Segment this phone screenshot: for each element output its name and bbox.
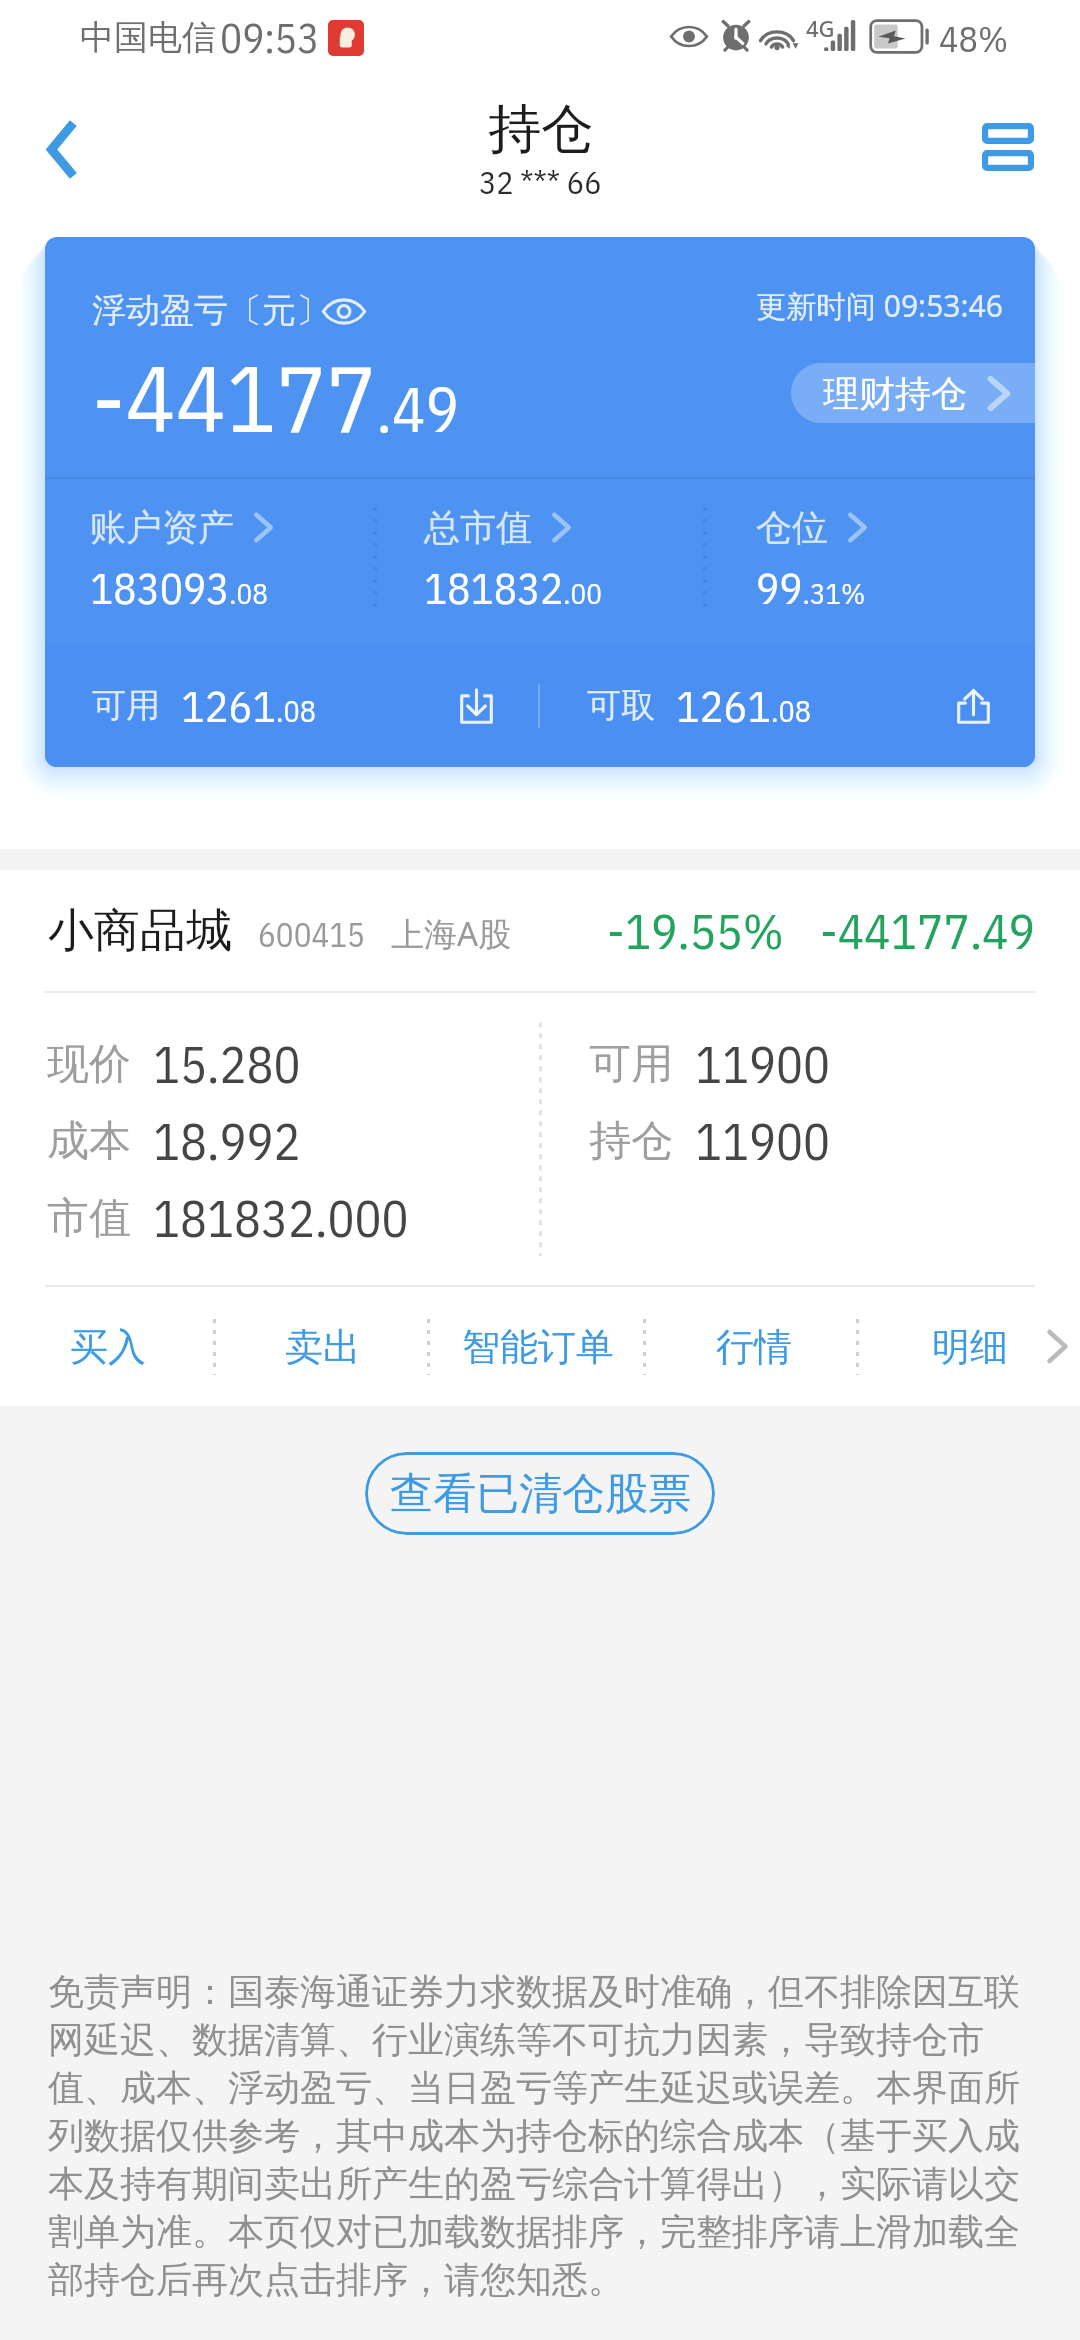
staticText: 中国电信 xyxy=(80,16,216,59)
staticText: 成本 xyxy=(47,1115,153,1168)
staticText: 免责声明：国泰海通证券力求数据及时准确，但不排除因互联网延迟、数据清算、行业演练… xyxy=(48,1969,1032,2303)
staticText: 总市值 xyxy=(424,505,532,550)
staticText: 181832.000 xyxy=(153,1186,409,1251)
button[interactable]: 查看已清仓股票 xyxy=(365,1452,715,1535)
staticText: 15.280 xyxy=(153,1032,301,1097)
staticText: 市值 xyxy=(47,1192,153,1245)
button[interactable]: Withdraw xyxy=(937,670,1009,742)
button[interactable]: Back xyxy=(0,90,126,205)
staticText: 上海A股 xyxy=(391,911,512,956)
staticText: 99.31% xyxy=(756,560,866,616)
button[interactable]: 总市值 xyxy=(424,505,602,616)
staticText: 明细 xyxy=(932,1323,1008,1371)
staticText: 行情 xyxy=(716,1323,792,1371)
staticText: 600415 xyxy=(258,913,365,956)
staticText: -44177.49 xyxy=(92,337,459,458)
staticText: 浮动盈亏〔元〕 xyxy=(92,289,330,332)
staticText: 可取 xyxy=(587,684,655,727)
button[interactable]: 行情 xyxy=(646,1287,862,1406)
staticText: 11900 xyxy=(695,1109,830,1174)
staticText: 持仓 xyxy=(488,96,594,163)
button[interactable]: 仓位 xyxy=(756,505,867,616)
button[interactable]: Switch layout xyxy=(954,90,1080,205)
staticText: 卖出 xyxy=(285,1323,361,1371)
staticText: 11900 xyxy=(695,1032,830,1097)
staticText: 18.992 xyxy=(153,1109,301,1174)
staticText: -44177.49 xyxy=(820,899,1036,963)
button[interactable]: 买入 xyxy=(0,1287,215,1406)
staticText: 仓位 xyxy=(756,505,828,550)
button[interactable]: 理财持仓 xyxy=(791,363,1035,423)
staticText: 账户资产 xyxy=(90,505,234,550)
staticText: 更新时间 09:53:46 xyxy=(756,285,1003,326)
staticText: 查看已清仓股票 xyxy=(390,1467,691,1521)
staticText: 1261.08 xyxy=(181,677,316,734)
staticText: -19.55% xyxy=(607,899,784,963)
staticText: 小商品城 xyxy=(48,902,232,960)
staticText: 181832.00 xyxy=(424,560,602,616)
staticText: 可用 xyxy=(92,684,160,727)
staticText: 现价 xyxy=(47,1038,153,1091)
staticText: 买入 xyxy=(70,1323,146,1371)
button[interactable]: 明细 xyxy=(862,1287,1078,1406)
staticText: 理财持仓 xyxy=(823,371,967,416)
staticText: 可用 xyxy=(589,1038,695,1091)
staticText: 持仓 xyxy=(589,1115,695,1168)
button[interactable]: Deposit xyxy=(440,670,512,742)
button[interactable]: 智能订单 xyxy=(430,1287,646,1406)
button[interactable]: 卖出 xyxy=(215,1287,430,1406)
button[interactable]: 小商品城 xyxy=(0,870,1080,991)
staticText: 智能订单 xyxy=(462,1323,614,1371)
staticText: 32 *** 66 xyxy=(479,161,602,203)
staticText: 48% xyxy=(939,15,1009,62)
staticText: 1261.08 xyxy=(676,677,811,734)
button[interactable]: 账户资产 xyxy=(90,505,273,616)
staticText: 183093.08 xyxy=(90,560,268,616)
staticText: 09:53 xyxy=(220,11,320,64)
other: Toggle visibility xyxy=(322,295,366,328)
staticText: 4G xyxy=(806,13,835,43)
